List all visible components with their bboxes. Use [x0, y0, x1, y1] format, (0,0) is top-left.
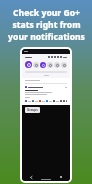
button[interactable]: Recents	[58, 174, 64, 180]
button[interactable]: Groups	[25, 107, 40, 113]
button[interactable]: Do not disturb toggle	[40, 62, 46, 68]
button[interactable]: Auto rotate toggle	[54, 62, 60, 68]
button[interactable]: Battery saver toggle	[61, 62, 67, 68]
button[interactable]: Share target 3	[46, 100, 48, 102]
button[interactable]: Share target 0	[25, 100, 27, 102]
button[interactable]: Back	[28, 174, 34, 180]
button[interactable]: Action 0	[60, 100, 62, 102]
button[interactable]: Action 1	[63, 100, 65, 102]
button[interactable]: Share target 4	[53, 100, 55, 102]
button[interactable]: Share target 0	[22, 78, 70, 105]
button[interactable]: Share target 2	[39, 100, 41, 102]
staticText: Groups	[27, 108, 38, 112]
button[interactable]: Wi-Fi toggle	[25, 61, 32, 68]
button[interactable]: Action 2	[66, 100, 67, 102]
button[interactable]: Bluetooth toggle	[33, 62, 39, 68]
button[interactable]: Flashlight toggle	[47, 62, 53, 68]
staticText: your notifications	[8, 31, 85, 43]
button[interactable]: Share target 1	[32, 100, 34, 102]
staticText: stats right from	[12, 19, 81, 31]
staticText: Check your Go+	[13, 7, 80, 19]
